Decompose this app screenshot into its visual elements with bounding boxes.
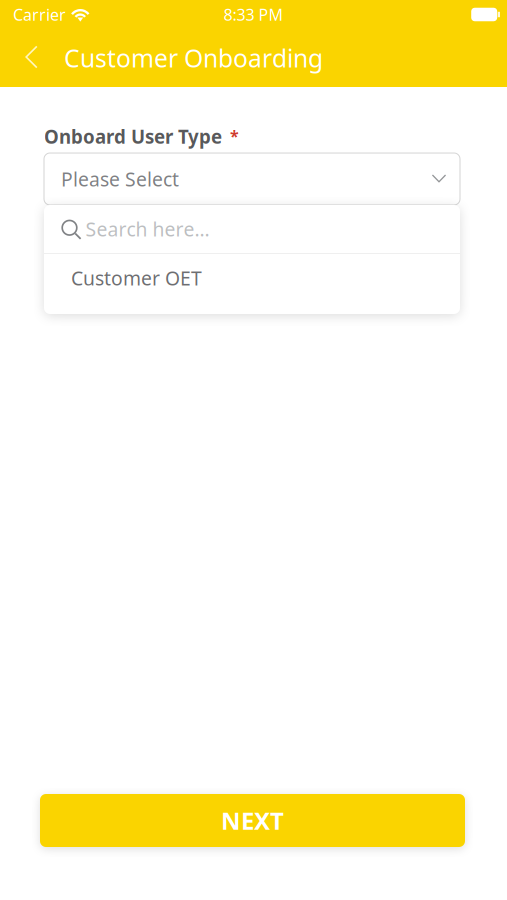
staticText: 8:33 PM — [223, 4, 283, 25]
staticText: Search here... — [85, 216, 209, 242]
staticText: NEXT — [221, 804, 284, 837]
staticText: Customer OET — [71, 265, 202, 291]
staticText: Please Select — [61, 166, 179, 192]
staticText: * — [230, 125, 239, 147]
staticText: Customer Onboarding — [64, 41, 323, 75]
staticText: Onboard User Type — [44, 124, 222, 149]
button[interactable]: Back — [0, 32, 64, 84]
staticText: Carrier — [13, 4, 66, 25]
button[interactable]: Search here... — [44, 205, 460, 253]
button[interactable]: NEXT — [40, 794, 465, 847]
button[interactable]: Please Select — [44, 153, 460, 205]
button[interactable]: Customer OET — [44, 254, 460, 302]
